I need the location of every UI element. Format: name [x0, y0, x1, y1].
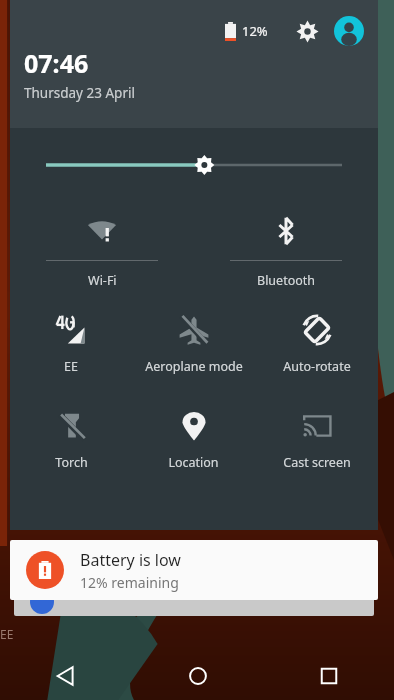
- button[interactable]: Settings: [290, 14, 324, 48]
- button[interactable]: Bluetooth: [194, 202, 378, 302]
- staticText: Thursday 23 April: [24, 84, 135, 102]
- staticText: 12% remaining: [80, 573, 179, 592]
- staticText: Aeroplane mode: [145, 358, 243, 375]
- staticText: 07:46: [24, 46, 89, 80]
- staticText: Wi-Fi: [88, 272, 117, 289]
- button[interactable]: Torch: [10, 398, 132, 494]
- staticText: Bluetooth: [257, 272, 316, 289]
- staticText: Auto-rotate: [283, 358, 351, 375]
- button[interactable]: Back: [0, 652, 132, 700]
- staticText: EE: [64, 358, 78, 375]
- button[interactable]: Location: [132, 398, 255, 494]
- button[interactable]: Battery is low: [10, 540, 378, 600]
- button[interactable]: EE: [10, 302, 132, 398]
- staticText: EE: [0, 626, 394, 642]
- button[interactable]: Home: [132, 652, 263, 700]
- button[interactable]: User account: [332, 14, 366, 48]
- button[interactable]: Cast screen: [255, 398, 378, 494]
- staticText: Battery is low: [80, 549, 181, 571]
- staticText: Cast screen: [283, 454, 351, 471]
- button[interactable]: Auto-rotate: [255, 302, 378, 398]
- staticText: Torch: [55, 454, 88, 471]
- button[interactable]: Brightness: [10, 128, 378, 202]
- button[interactable]: Wi-Fi: [10, 202, 194, 302]
- staticText: Location: [168, 454, 219, 471]
- button[interactable]: Recents: [263, 652, 394, 700]
- staticText: 12%: [242, 22, 268, 40]
- button[interactable]: Aeroplane mode: [132, 302, 255, 398]
